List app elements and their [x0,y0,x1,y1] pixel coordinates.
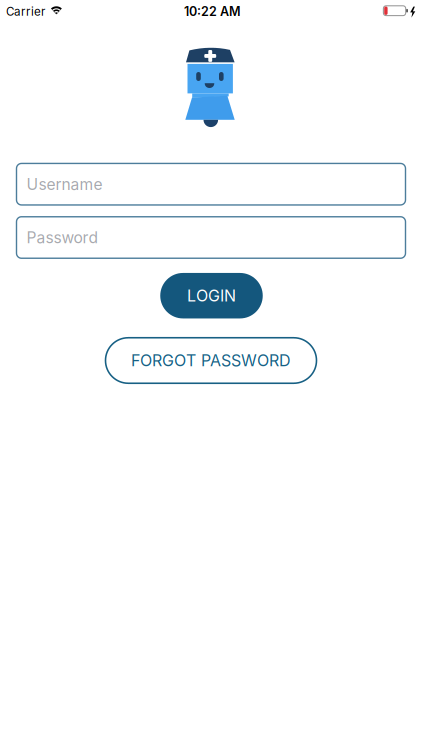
button[interactable]: LOGIN [160,273,263,318]
staticText: LOGIN [187,286,236,305]
staticText: Carrier [6,4,45,18]
button[interactable]: FORGOT PASSWORD [105,338,316,383]
staticText: Username [26,175,102,194]
staticText: Password [26,228,98,247]
staticText: FORGOT PASSWORD [131,351,291,370]
button[interactable]: Username [16,163,405,205]
staticText: 10:22 AM [184,4,241,19]
button[interactable]: Password [16,217,405,258]
